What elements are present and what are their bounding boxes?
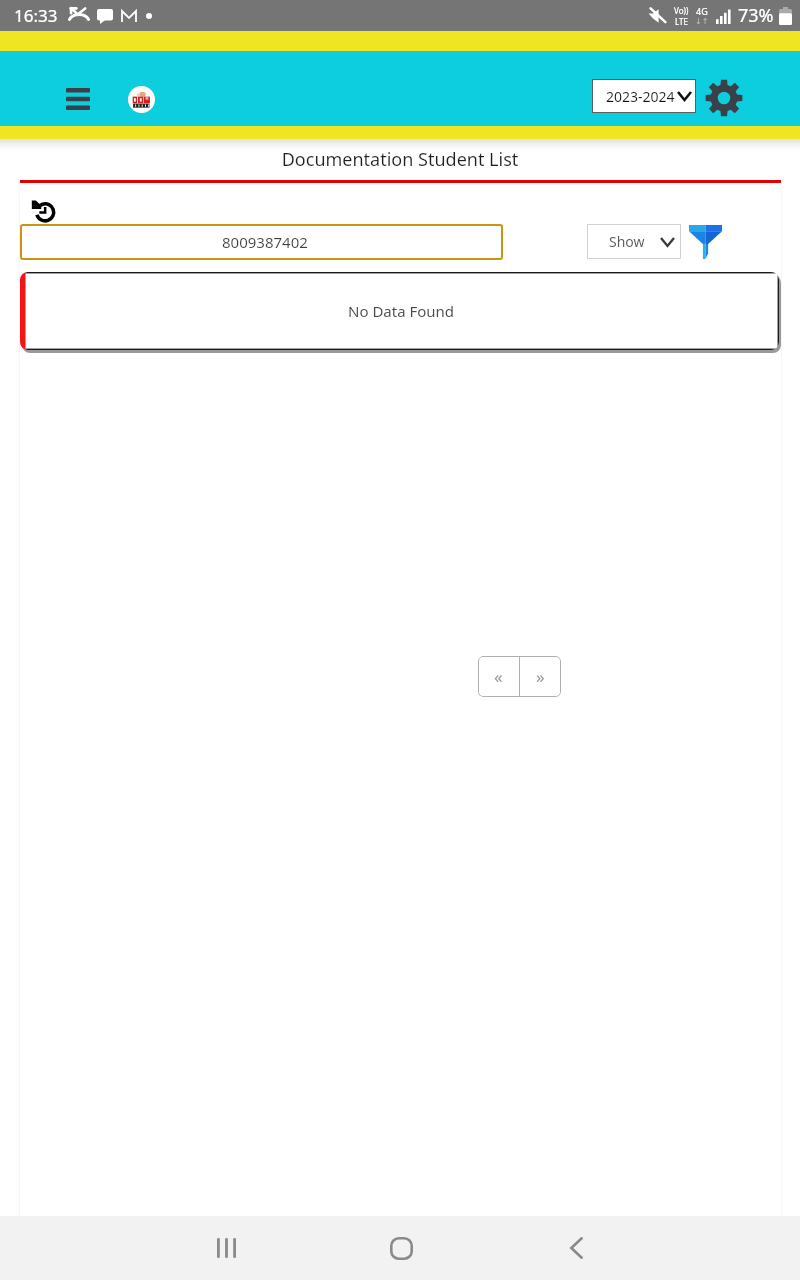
staticText: 73%: [738, 3, 774, 28]
button[interactable]: 2023-2024: [592, 79, 696, 113]
staticText: Show: [609, 232, 645, 251]
button[interactable]: ODM logo: [128, 86, 155, 113]
staticText: 4G: [696, 5, 708, 17]
button[interactable]: 8009387402: [20, 224, 503, 260]
button[interactable]: Reset filters: [26, 194, 60, 228]
staticText: «: [494, 665, 503, 688]
staticText: ↓↑: [695, 17, 709, 26]
staticText: 2023-2024: [606, 87, 675, 106]
button[interactable]: Show: [587, 224, 681, 259]
staticText: 16:33: [14, 4, 58, 27]
button[interactable]: Previous page: [478, 656, 519, 697]
staticText: Vo)): [674, 5, 689, 16]
button[interactable]: Recent apps: [186, 1216, 266, 1280]
button[interactable]: Menu: [58, 80, 98, 118]
button[interactable]: Settings: [702, 76, 746, 120]
staticText: No Data Found: [348, 301, 455, 321]
staticText: »: [536, 665, 545, 688]
button[interactable]: Next page: [520, 656, 561, 697]
staticText: LTE: [675, 16, 688, 27]
button[interactable]: Home: [361, 1216, 441, 1280]
button[interactable]: Filter: [684, 222, 726, 262]
button[interactable]: No Data Found: [20, 272, 779, 350]
staticText: 8009387402: [222, 232, 308, 252]
button[interactable]: Back: [536, 1216, 616, 1280]
staticText: Documentation Student List: [0, 147, 800, 172]
